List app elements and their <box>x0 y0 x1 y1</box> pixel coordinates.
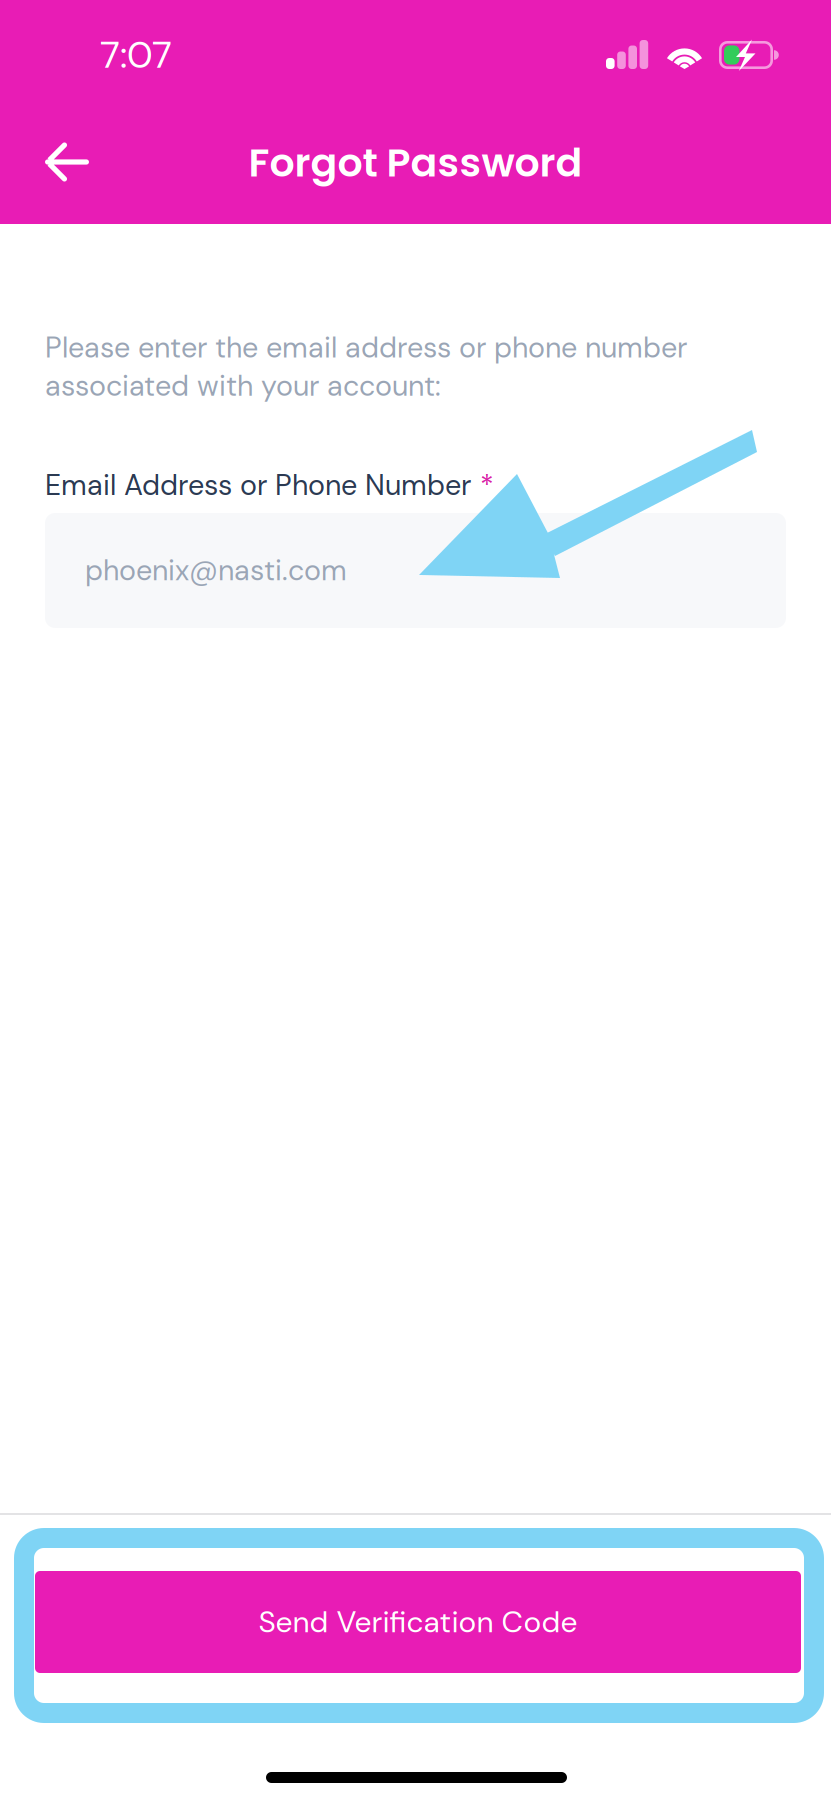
staticText: 7:07 <box>100 31 172 79</box>
staticText: phoenix@nasti.com <box>85 552 347 589</box>
staticText: Please enter the email address or phone … <box>45 329 687 405</box>
button[interactable]: Send Verification Code <box>35 1571 801 1673</box>
staticText: Email Address or Phone Number <box>45 467 471 504</box>
button[interactable]: Back <box>45 140 89 184</box>
button[interactable]: phoenix@nasti.com <box>45 513 786 628</box>
staticText: Forgot Password <box>248 135 582 190</box>
staticText: * <box>480 467 494 504</box>
staticText: Send Verification Code <box>258 1603 577 1641</box>
